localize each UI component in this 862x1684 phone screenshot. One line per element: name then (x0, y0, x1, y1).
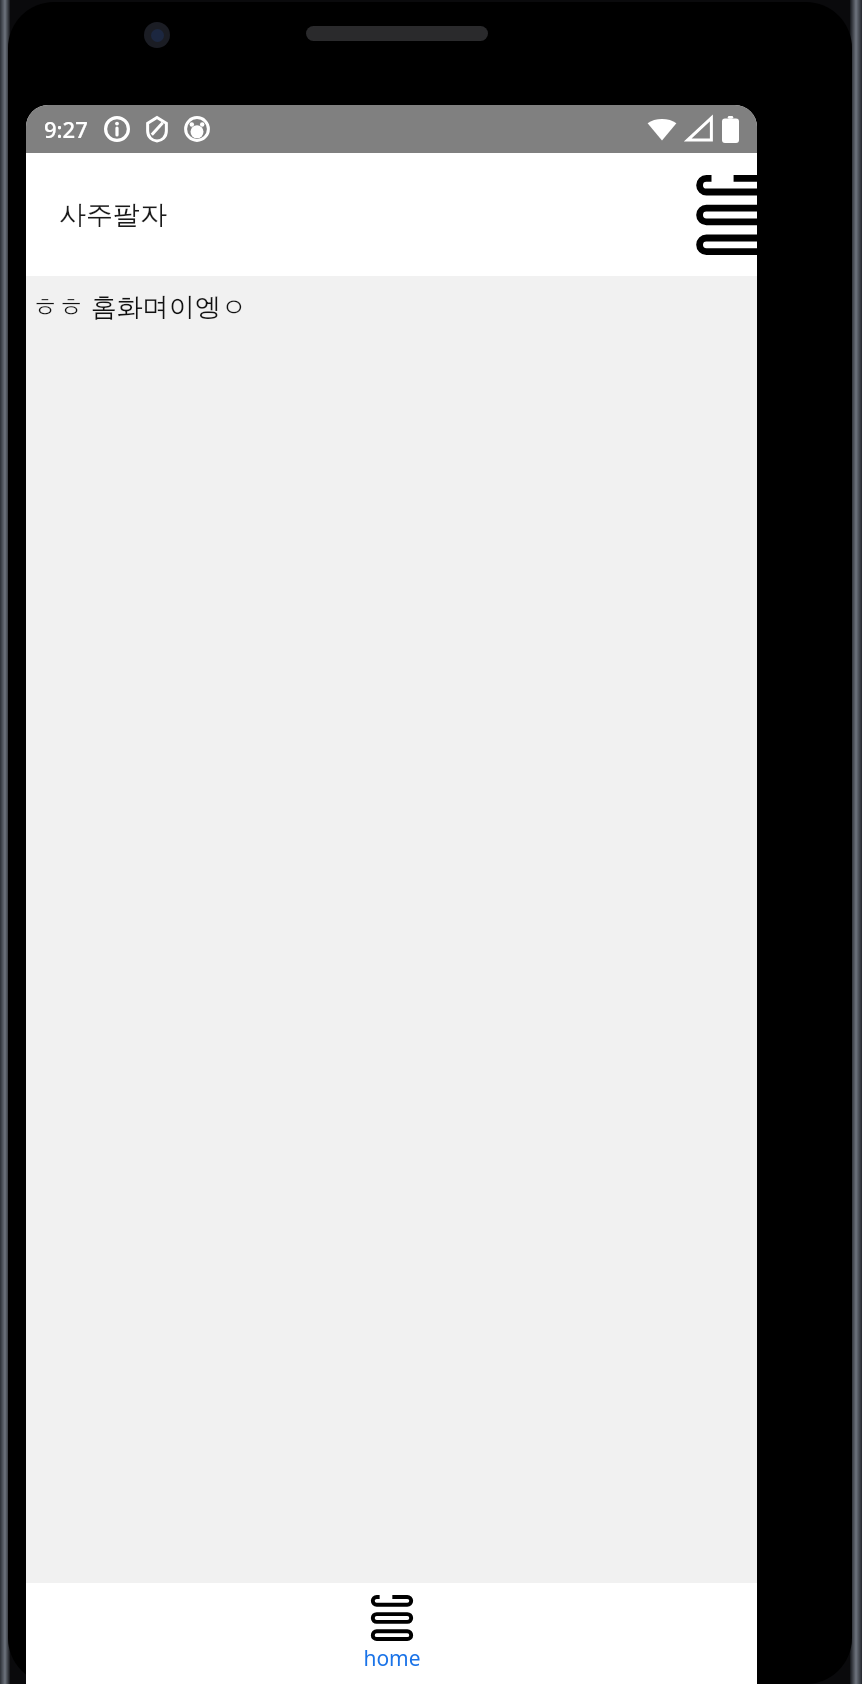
button[interactable]: Menu (687, 169, 757, 261)
staticText: home (363, 1644, 421, 1673)
staticText: ㅎㅎ 홈화며이엥ㅇ (32, 288, 247, 324)
staticText: 사주팔자 (59, 198, 167, 232)
staticText: 9:27 (44, 114, 88, 144)
button[interactable]: home (302, 1583, 482, 1684)
